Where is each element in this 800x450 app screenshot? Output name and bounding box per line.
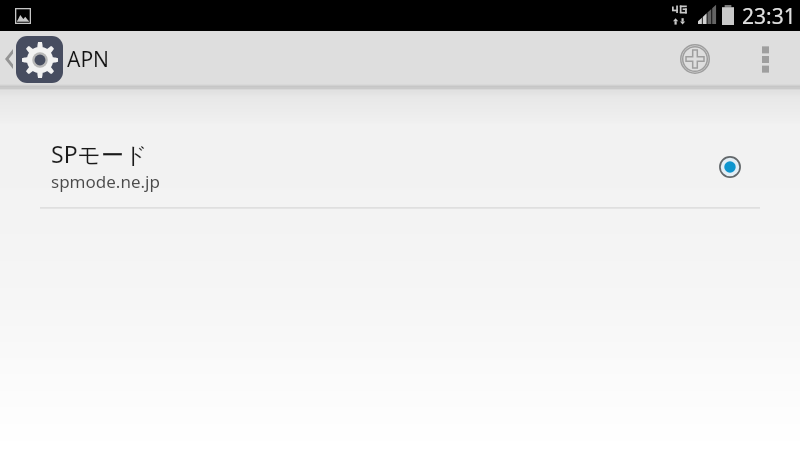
button[interactable]: Navigate up bbox=[5, 31, 800, 87]
button[interactable]: SPモード selected bbox=[719, 156, 741, 178]
staticText: 23:31 bbox=[742, 2, 796, 31]
staticText: SPモード bbox=[51, 138, 148, 169]
button[interactable]: More options bbox=[737, 31, 793, 87]
staticText: spmode.ne.jp bbox=[51, 170, 160, 193]
staticText: APN bbox=[67, 45, 110, 74]
button[interactable] bbox=[0, 88, 800, 208]
button[interactable]: Add APN bbox=[667, 31, 723, 87]
